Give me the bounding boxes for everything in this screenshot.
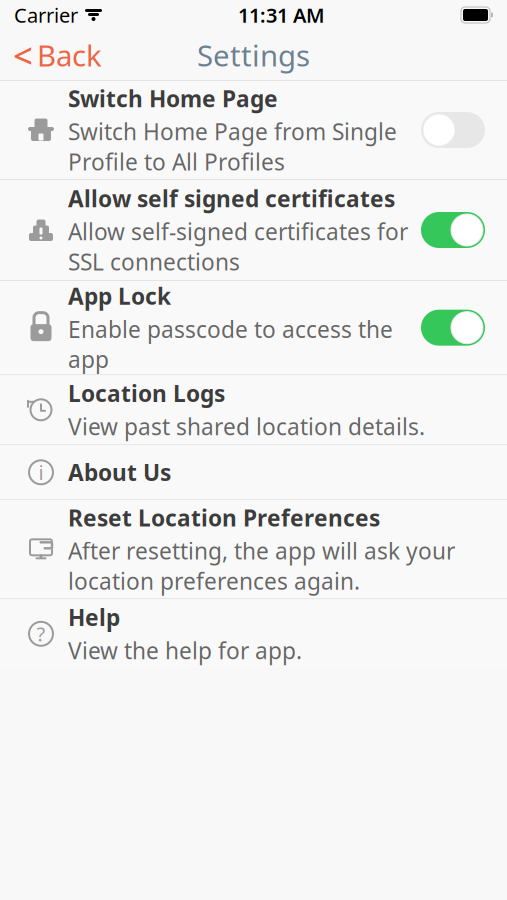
staticText: View past shared location details. [68, 411, 425, 441]
staticText: ? [36, 620, 45, 647]
staticText: 11:31 AM [238, 2, 325, 28]
staticText: Switch Home Page [68, 83, 278, 113]
button[interactable]: < [0, 30, 118, 80]
staticText: Allow self signed certificates [68, 183, 395, 213]
button[interactable]: ? [0, 599, 507, 668]
staticText: i [38, 459, 43, 486]
button[interactable]: Switch Home Page [0, 81, 507, 179]
staticText: Location Logs [68, 378, 225, 408]
staticText: Enable passcode to access the app [68, 314, 393, 374]
staticText: Back [37, 35, 102, 74]
button[interactable]: Allow self signed certificates [0, 180, 507, 280]
staticText: View the help for app. [68, 635, 302, 665]
button[interactable]: i [0, 445, 507, 499]
button[interactable]: App Lock [0, 281, 507, 374]
staticText: Help [68, 602, 120, 632]
staticText: About Us [68, 457, 171, 487]
button[interactable]: Location Logs [0, 375, 507, 444]
staticText: Reset Location Preferences [68, 503, 380, 533]
staticText: Settings [197, 35, 310, 74]
button[interactable]: Reset Location Preferences [0, 500, 507, 598]
staticText: Switch Home Page from Single Profile to … [68, 116, 397, 177]
staticText: After resetting, the app will ask your l… [68, 536, 455, 596]
staticText: App Lock [68, 281, 171, 311]
staticText: < [13, 32, 33, 78]
staticText: Carrier [14, 2, 78, 28]
staticText: Allow self-signed certificates for SSL c… [68, 216, 408, 277]
